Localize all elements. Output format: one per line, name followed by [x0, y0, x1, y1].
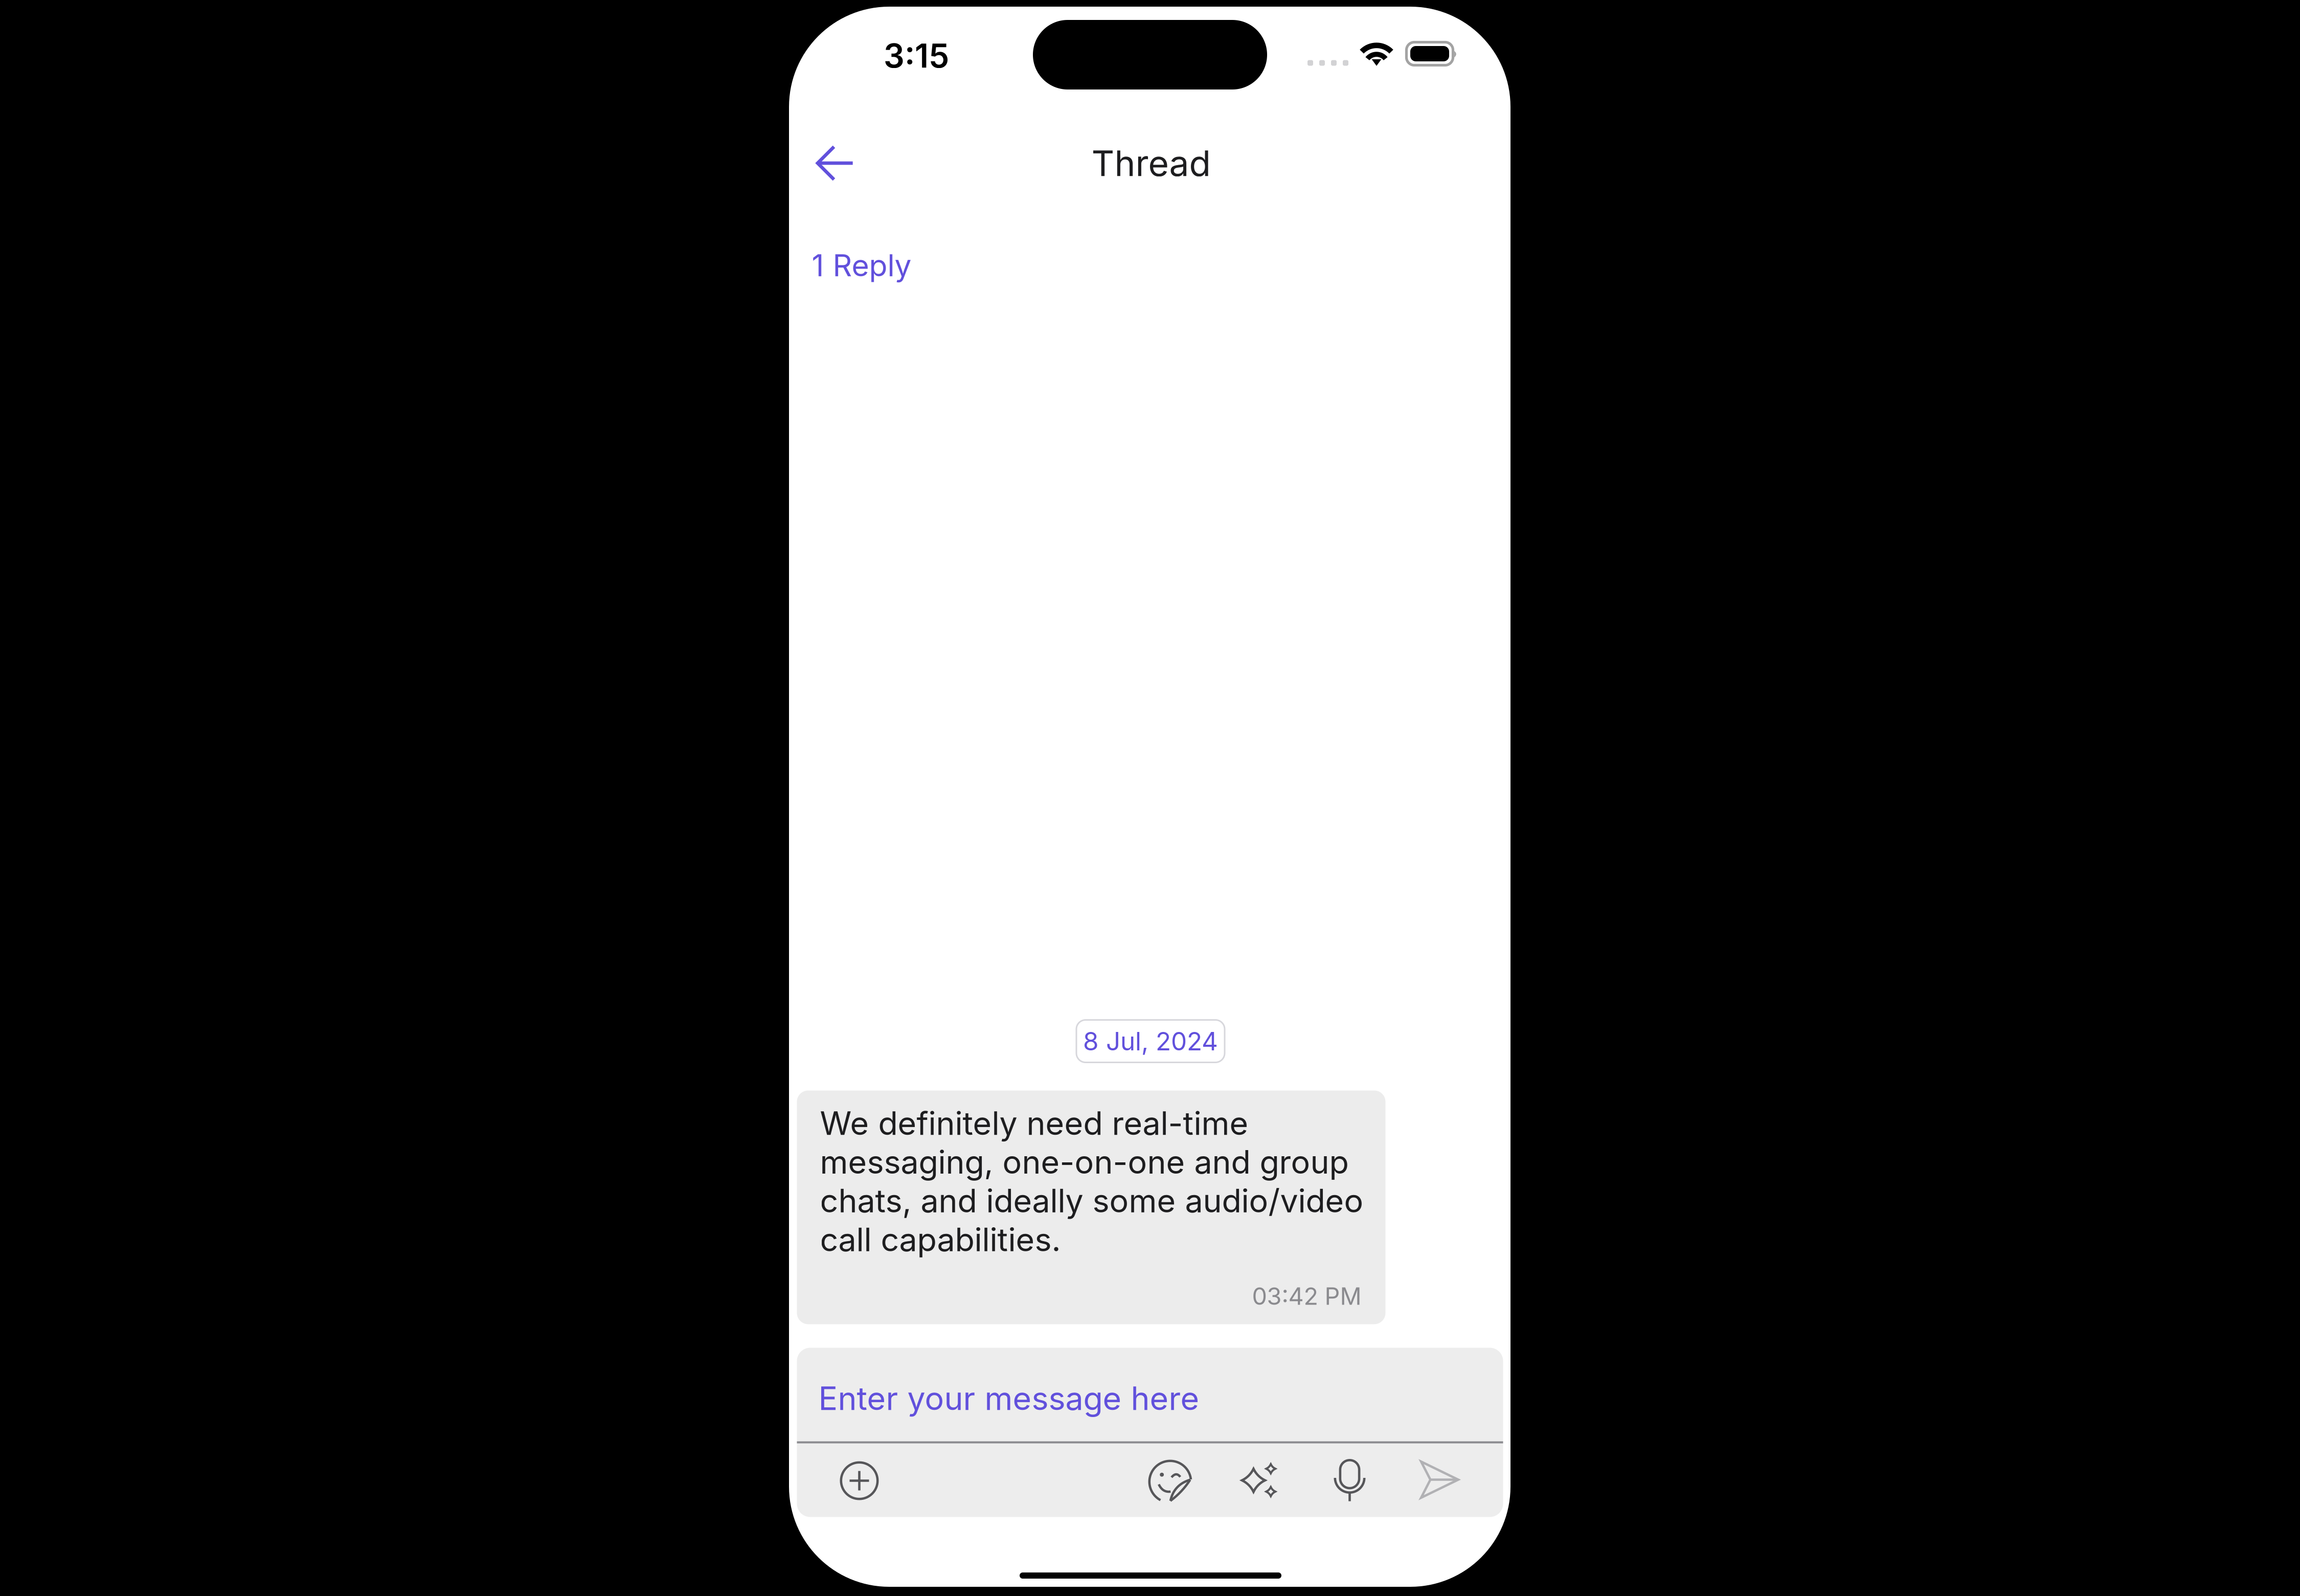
button[interactable]: Send — [1410, 1449, 1470, 1510]
button[interactable]: Add attachment — [829, 1451, 889, 1511]
staticText: We definitely need real-time messaging, … — [820, 1104, 1363, 1259]
staticText: 8 Jul, 2024 — [1083, 1026, 1218, 1056]
button[interactable]: AI suggestions — [1228, 1450, 1289, 1510]
staticText: Enter your message here — [818, 1379, 1199, 1418]
staticText: Thread — [1091, 142, 1211, 185]
staticText: 03:42 PM — [1252, 1282, 1361, 1311]
button[interactable]: 1 Reply — [805, 241, 919, 289]
button[interactable]: Back — [801, 129, 869, 197]
button[interactable]: Record a voice message — [1320, 1451, 1380, 1511]
staticText: 3:15 — [884, 36, 949, 76]
button[interactable]: Stickers — [1140, 1452, 1200, 1512]
staticText: 1 Reply — [812, 247, 911, 284]
